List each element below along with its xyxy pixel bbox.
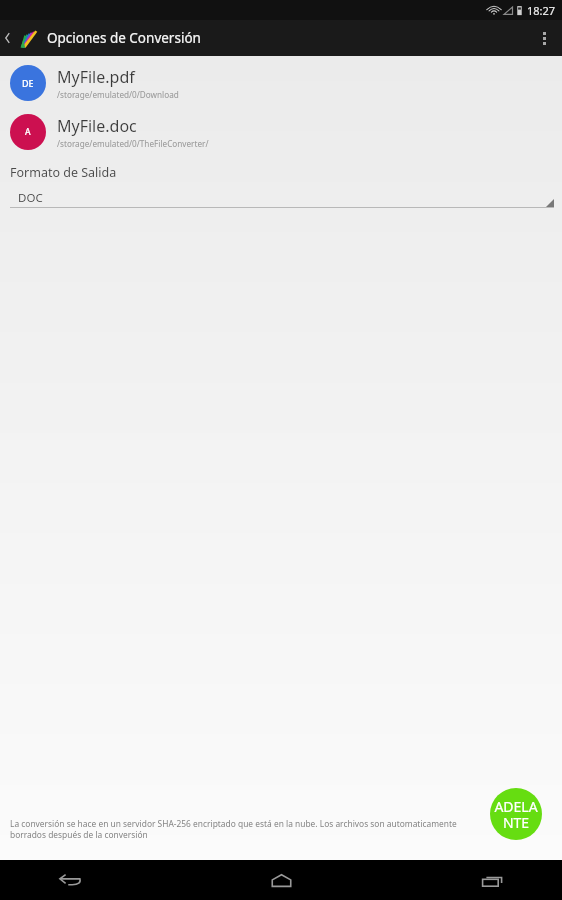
button[interactable]: Back — [40, 860, 100, 900]
button[interactable]: Home — [251, 860, 311, 900]
button[interactable]: More options — [526, 20, 562, 56]
staticText: La conversión se hace en un servidor SHA… — [10, 818, 484, 840]
staticText: ADELANTE — [490, 797, 542, 832]
staticText: MyFile.doc — [57, 115, 137, 137]
staticText: DOC — [18, 190, 43, 206]
button[interactable]: DOC — [10, 188, 554, 208]
staticText: /storage/emulated/0/Download — [57, 89, 179, 100]
staticText: Opciones de Conversión — [47, 29, 201, 47]
button[interactable]: A — [0, 113, 562, 151]
staticText: Formato de Salida — [10, 164, 117, 181]
button[interactable]: Back — [0, 20, 14, 56]
staticText: /storage/emulated/0/TheFileConverter/ — [57, 138, 209, 149]
staticText: 18:27 — [527, 3, 556, 18]
button[interactable]: DE — [0, 64, 562, 102]
staticText: DE — [22, 77, 34, 89]
button[interactable]: ADELANTE — [490, 788, 542, 840]
button[interactable]: Recents — [462, 860, 522, 900]
staticText: MyFile.pdf — [57, 66, 135, 88]
button[interactable]: App icon — [15, 20, 41, 56]
staticText: A — [25, 126, 31, 138]
